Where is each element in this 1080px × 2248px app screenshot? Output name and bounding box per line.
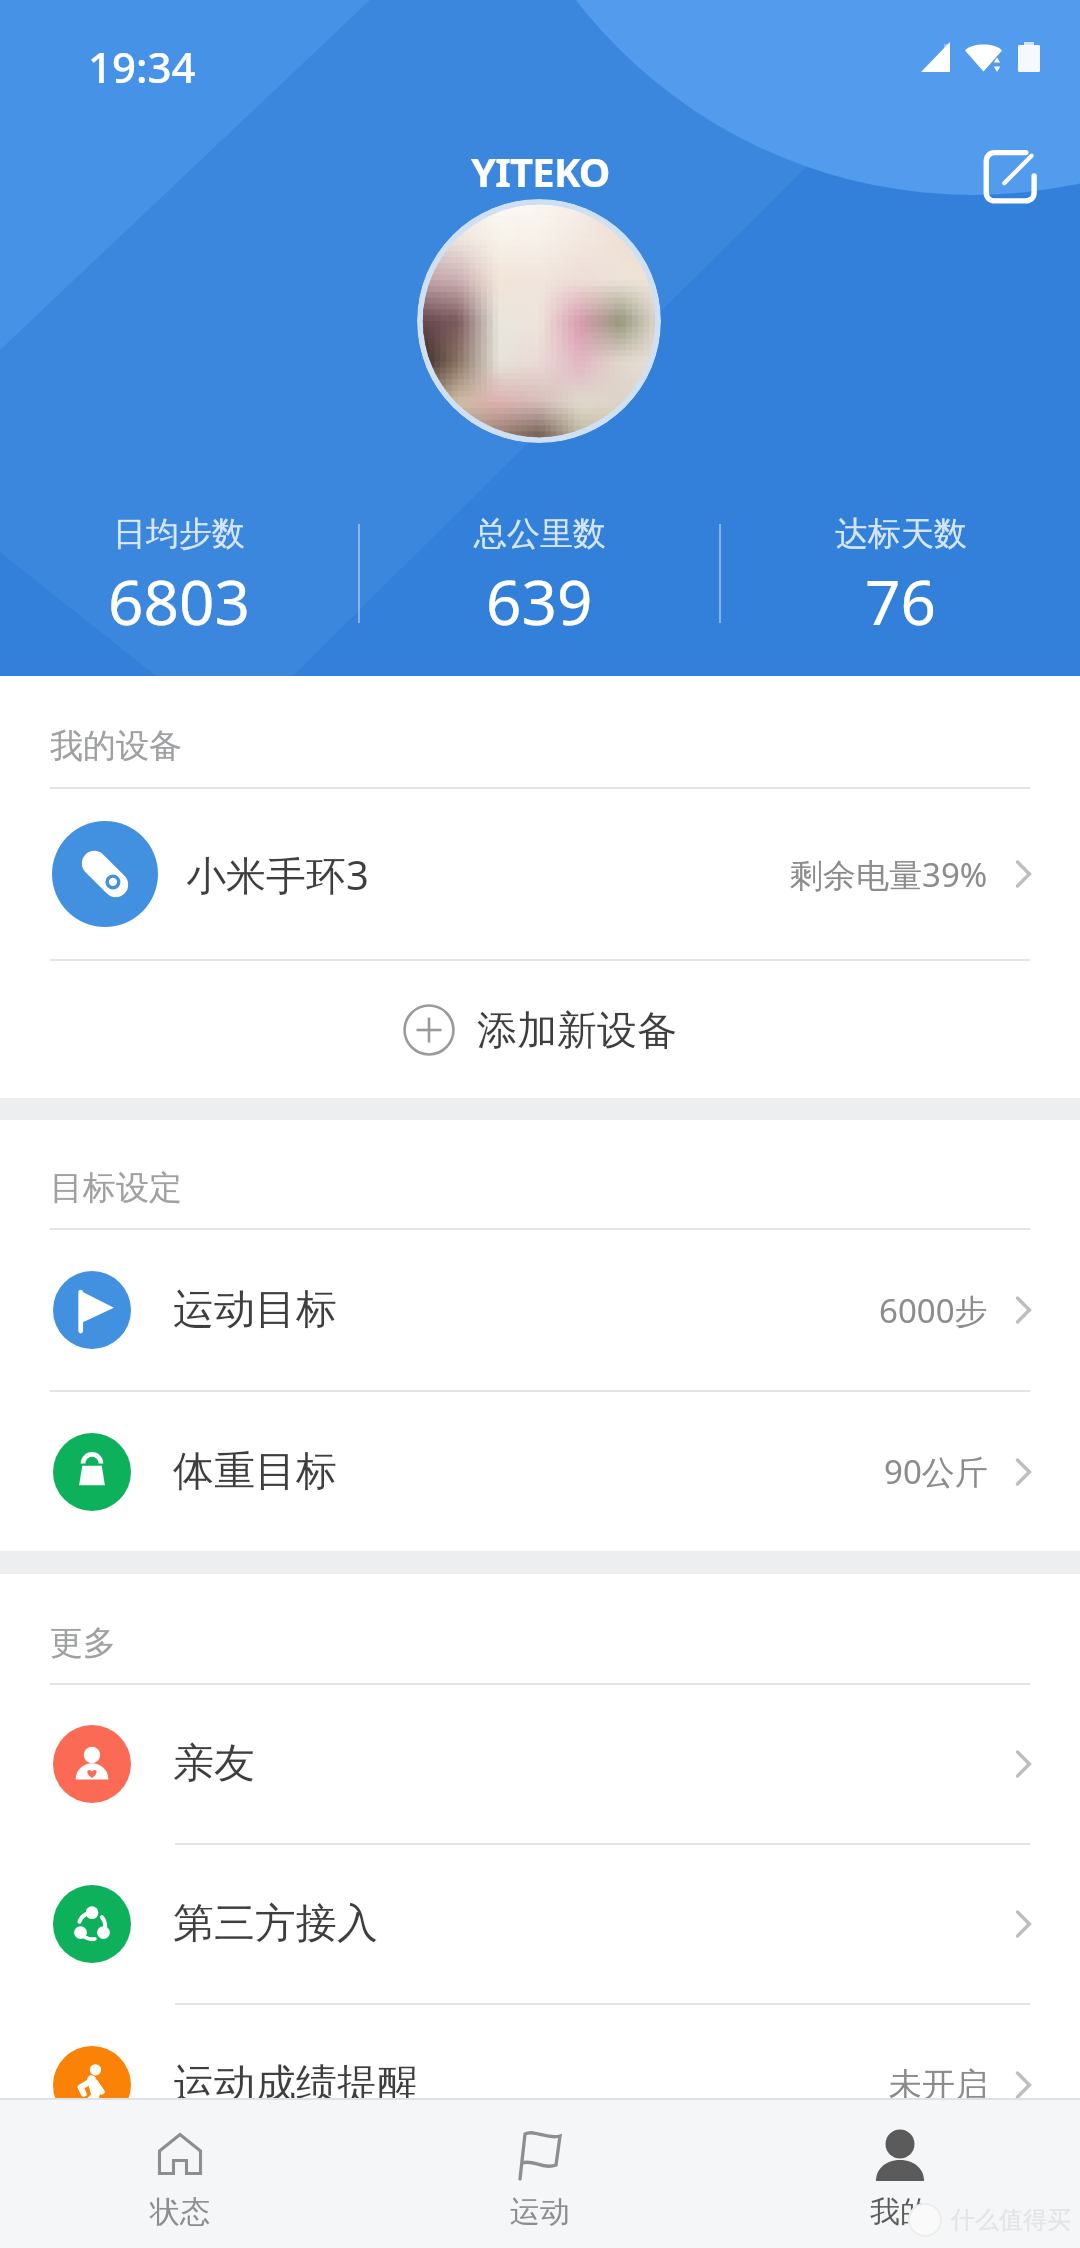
button[interactable]: 总公里数 (360, 513, 719, 643)
staticText: 运动目标 (173, 1284, 337, 1336)
staticText: 运动成绩提醒 (173, 2059, 419, 2111)
button[interactable]: 第三方接入 (0, 1845, 1080, 2003)
button[interactable]: 添加新设备 (0, 961, 1080, 1098)
staticText: 未开启 (889, 2064, 988, 2106)
staticText: 达标天数 (835, 513, 967, 555)
staticText: YITEKO (471, 144, 610, 198)
staticText: 我的 (870, 2193, 930, 2231)
staticText: 运动 (510, 2193, 570, 2231)
button[interactable]: 状态 (0, 2100, 360, 2248)
staticText: 目标设定 (50, 1167, 182, 1209)
staticText: 639 (486, 559, 593, 643)
staticText: 更多 (50, 1622, 116, 1664)
staticText: 体重目标 (173, 1446, 337, 1498)
staticText: 第三方接入 (173, 1898, 378, 1950)
staticText: 6000步 (879, 1288, 988, 1333)
staticText: 亲友 (173, 1738, 255, 1790)
staticText: 日均步数 (113, 513, 245, 555)
staticText: 90公斤 (884, 1449, 988, 1494)
button[interactable]: 达标天数 (721, 513, 1080, 643)
staticText: 6803 (108, 559, 250, 643)
button[interactable]: 日均步数 (0, 513, 358, 643)
staticText: 76 (865, 559, 936, 643)
button[interactable]: 运动成绩提醒 (0, 2005, 1080, 2165)
button[interactable]: Edit profile (974, 140, 1046, 212)
staticText: 什么值得买 (951, 2205, 1071, 2235)
button[interactable]: 亲友 (0, 1685, 1080, 1843)
button[interactable]: 小米手环3 (0, 789, 1080, 959)
button[interactable]: 体重目标 (0, 1392, 1080, 1551)
button[interactable]: 我的 (720, 2100, 1080, 2248)
button[interactable]: 运动目标 (0, 1230, 1080, 1390)
staticText: 添加新设备 (477, 1005, 677, 1055)
staticText: 剩余电量39% (790, 852, 988, 897)
button[interactable]: 运动 (360, 2100, 720, 2248)
staticText: 总公里数 (474, 513, 606, 555)
staticText: 19:34 (88, 38, 196, 95)
staticText: 状态 (150, 2193, 210, 2231)
staticText: 小米手环3 (186, 847, 369, 902)
button[interactable]: Profile photo (417, 199, 661, 443)
staticText: 我的设备 (50, 725, 182, 767)
